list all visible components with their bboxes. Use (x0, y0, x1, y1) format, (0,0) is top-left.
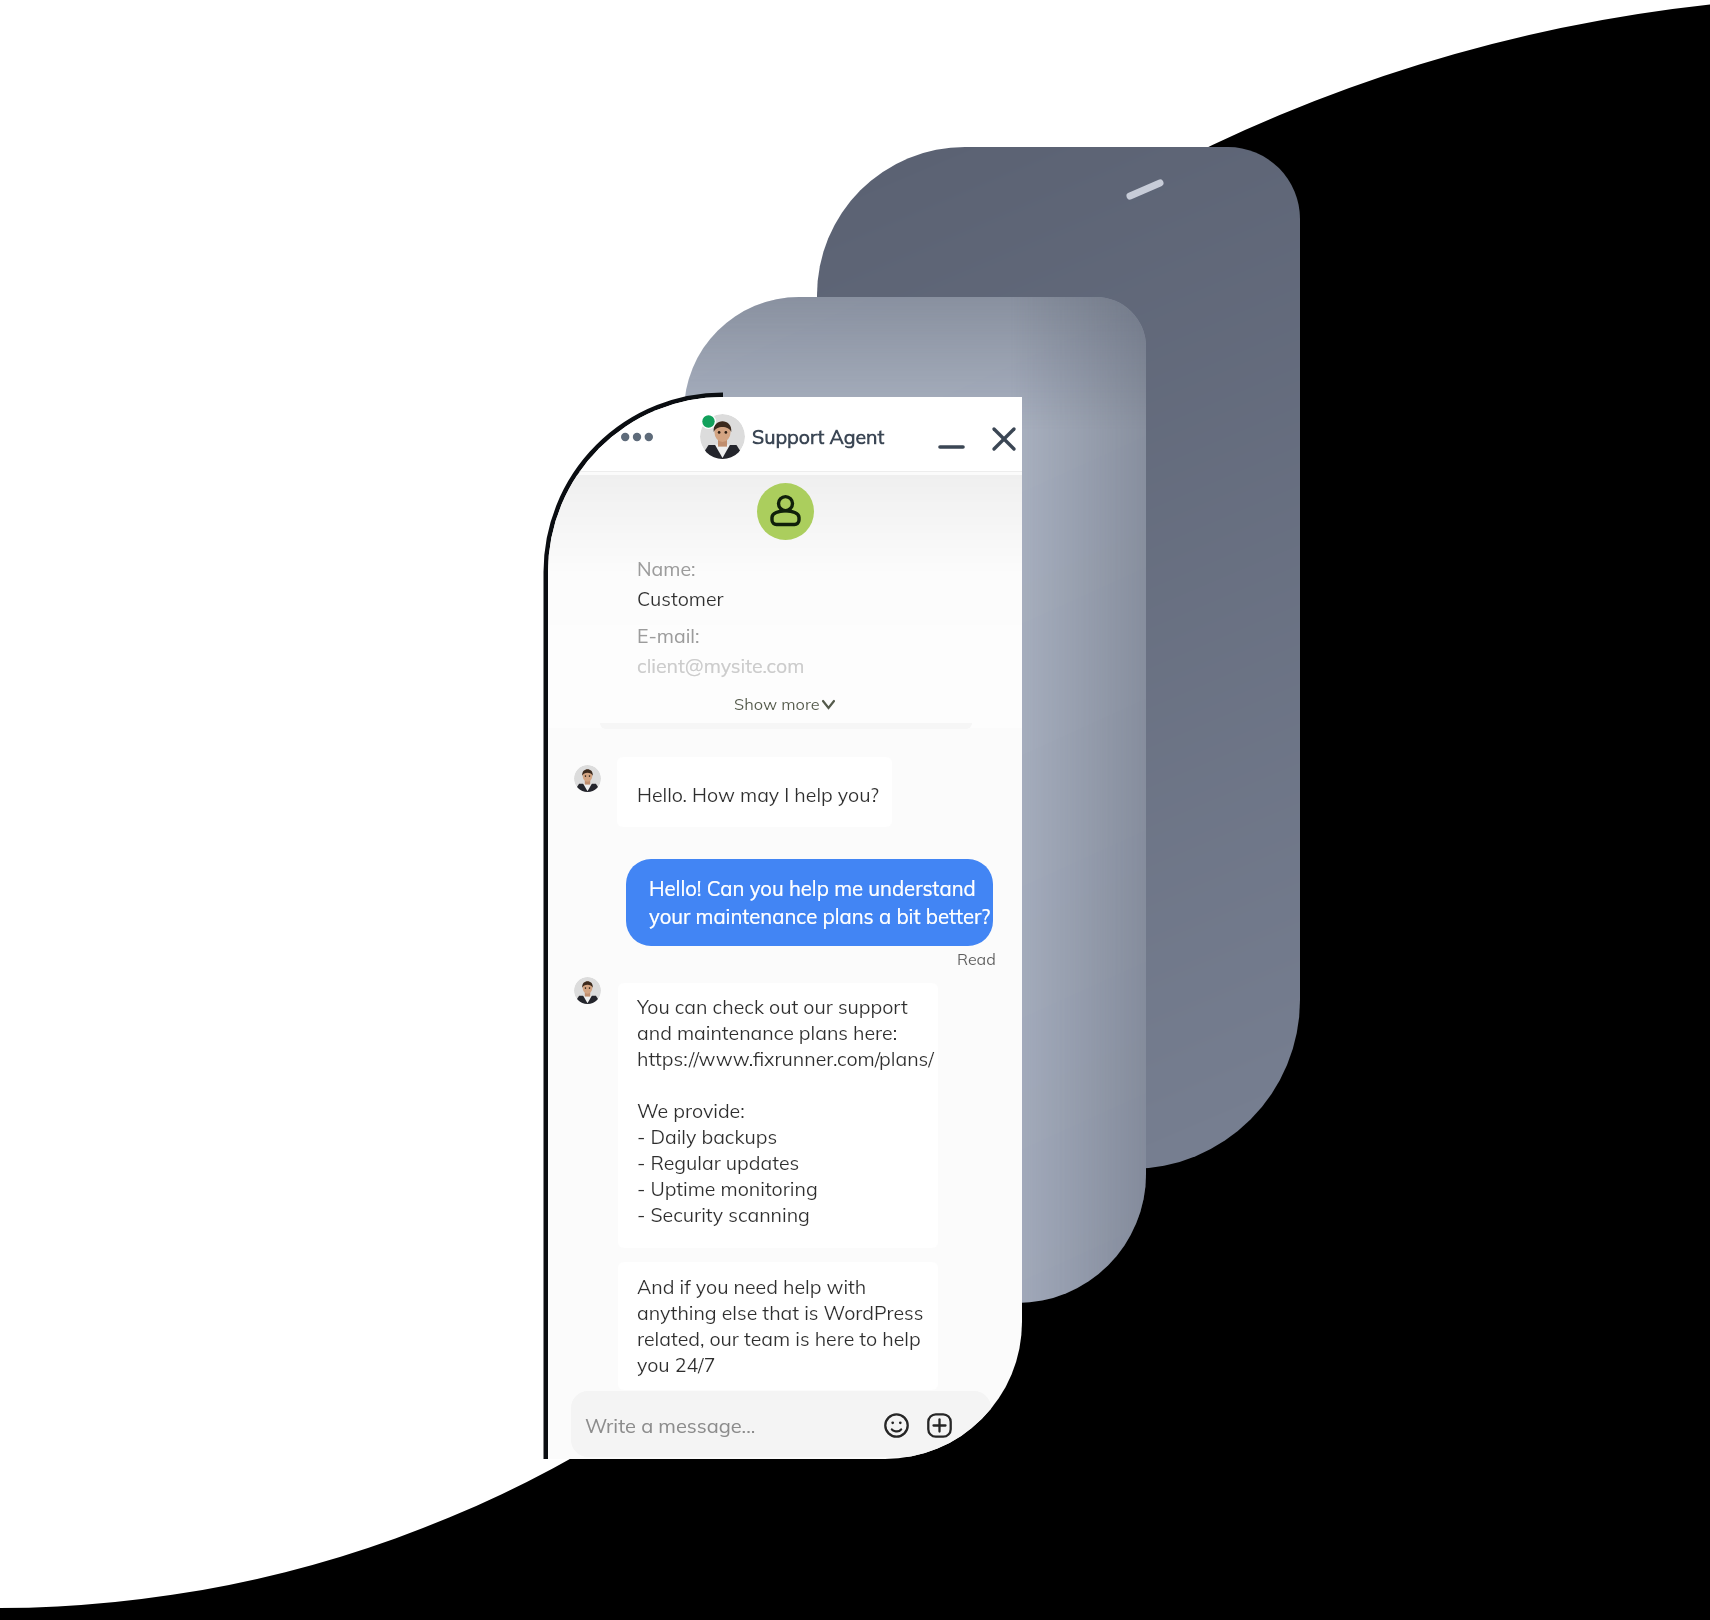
button[interactable] (618, 983, 938, 1248)
staticText: You can check out our support and mainte… (637, 994, 934, 1227)
staticText: Hello. How may I help you? (637, 782, 879, 806)
button[interactable] (571, 1391, 991, 1457)
button[interactable] (626, 859, 993, 946)
button[interactable]: More options (615, 424, 659, 450)
button[interactable]: Add attachment (927, 1413, 952, 1438)
button[interactable] (730, 690, 836, 718)
staticText: Support Agent (752, 424, 885, 448)
staticText: Name: (637, 556, 696, 580)
button[interactable]: Minimise (936, 419, 970, 453)
staticText: client@mysite.com (637, 653, 805, 677)
staticText: Write a message... (585, 1413, 756, 1438)
staticText: E-mail: (637, 623, 700, 647)
button[interactable]: Insert emoji (884, 1413, 909, 1438)
button[interactable] (617, 757, 892, 827)
button[interactable]: Close (990, 425, 1018, 453)
staticText: Hello! Can you help me understand your m… (649, 876, 991, 929)
staticText: Read (957, 949, 996, 969)
staticText: Customer (637, 586, 724, 610)
staticText: Show more (734, 694, 820, 714)
button[interactable] (618, 1262, 938, 1390)
staticText: And if you need help with anything else … (637, 1274, 924, 1377)
